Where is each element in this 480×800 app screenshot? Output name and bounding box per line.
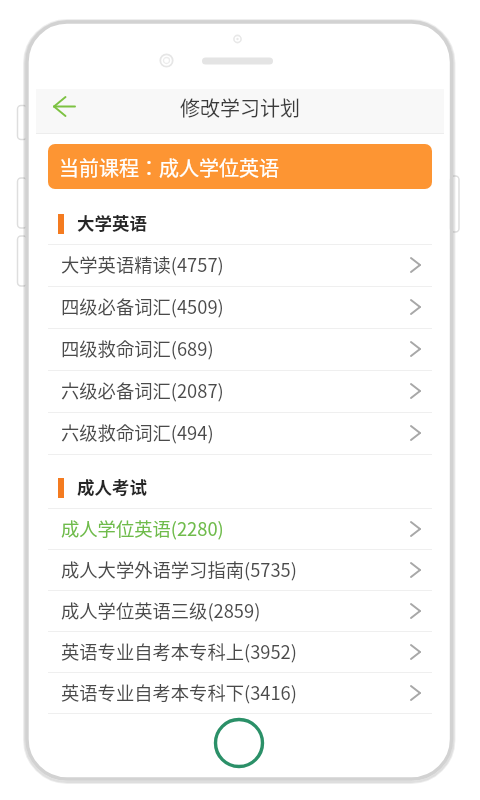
button[interactable]: 成人学位英语(2280): [36, 509, 444, 550]
button[interactable]: Back: [42, 89, 82, 134]
button[interactable]: Home: [214, 718, 264, 768]
staticText: 当前课程：成人学位英语: [59, 153, 279, 182]
staticText: 大学英语: [77, 210, 147, 235]
button[interactable]: 当前课程：成人学位英语: [48, 144, 432, 189]
staticText: 成人大学外语学习指南(5735): [61, 556, 297, 582]
button[interactable]: 成人大学外语学习指南(5735): [36, 550, 444, 591]
button[interactable]: 四级救命词汇(689): [36, 329, 444, 371]
button[interactable]: 英语专业自考本专科下(3416): [36, 673, 444, 714]
button[interactable]: 六级必备词汇(2087): [36, 371, 444, 413]
staticText: 六级必备词汇(2087): [61, 377, 224, 403]
staticText: 成人学位英语(2280): [61, 515, 224, 541]
staticText: 成人考试: [77, 474, 147, 499]
staticText: 大学英语精读(4757): [61, 251, 224, 277]
button[interactable]: 大学英语精读(4757): [36, 245, 444, 287]
button[interactable]: 四级必备词汇(4509): [36, 287, 444, 329]
staticText: 英语专业自考本专科上(3952): [61, 638, 297, 664]
staticText: 成人学位英语三级(2859): [61, 597, 261, 623]
staticText: 四级必备词汇(4509): [61, 293, 224, 319]
staticText: 修改学习计划: [180, 93, 300, 122]
staticText: 英语专业自考本专科下(3416): [61, 679, 297, 705]
staticText: 四级救命词汇(689): [61, 335, 214, 361]
button[interactable]: 六级救命词汇(494): [36, 413, 444, 455]
staticText: 六级救命词汇(494): [61, 419, 214, 445]
button[interactable]: 成人学位英语三级(2859): [36, 591, 444, 632]
button[interactable]: 英语专业自考本专科上(3952): [36, 632, 444, 673]
